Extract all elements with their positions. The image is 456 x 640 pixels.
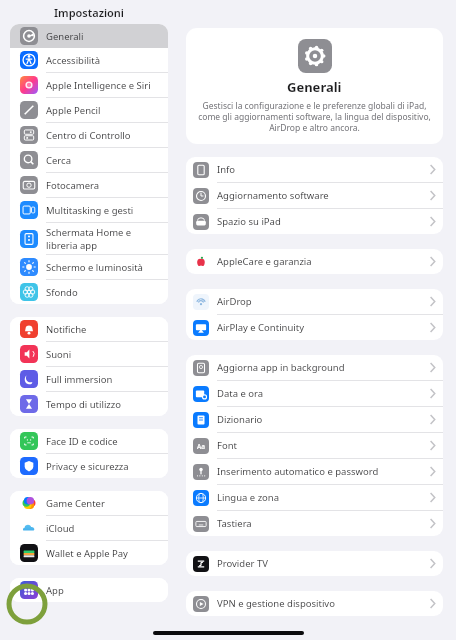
staticText: Tempo di utilizzo: [46, 398, 122, 411]
button[interactable]: Tempo di utilizzo: [10, 392, 168, 416]
button[interactable]: Schermata Home e: [10, 223, 168, 254]
staticText: Font: [217, 439, 237, 452]
staticText: Suoni: [46, 348, 72, 361]
button[interactable]: Accessibilità: [10, 48, 168, 72]
staticText: Data e ora: [217, 387, 264, 400]
staticText: Spazio su iPad: [217, 215, 281, 228]
button[interactable]: Game Center: [10, 491, 168, 515]
staticText: AppleCare e garanzia: [217, 255, 312, 268]
staticText: Dizionario: [217, 413, 263, 426]
staticText: Cerca: [46, 154, 71, 167]
staticText: AirPlay e Continuity: [217, 321, 305, 334]
button[interactable]: Dizionario: [186, 407, 443, 432]
staticText: Centro di Controllo: [46, 129, 131, 142]
staticText: iCloud: [46, 522, 75, 535]
staticText: Apple Pencil: [46, 104, 101, 117]
staticText: Privacy e sicurezza: [46, 460, 129, 473]
staticText: Schermo e luminosità: [46, 261, 143, 274]
staticText: libreria app: [46, 239, 98, 252]
button[interactable]: Full immersion: [10, 367, 168, 391]
staticText: Notifiche: [46, 323, 87, 336]
staticText: Lingua e zona: [217, 491, 280, 504]
button[interactable]: Notifiche: [10, 317, 168, 341]
button[interactable]: Provider TV: [186, 551, 443, 576]
button[interactable]: Inserimento automatico e password: [186, 459, 443, 484]
staticText: Sfondo: [46, 286, 78, 299]
staticText: Gestisci la configurazione e le preferen…: [198, 100, 431, 133]
staticText: VPN e gestione dispositivo: [217, 597, 335, 610]
staticText: Tastiera: [217, 517, 252, 530]
button[interactable]: Tastiera: [186, 511, 443, 536]
button[interactable]: Schermo e luminosità: [10, 255, 168, 279]
staticText: Schermata Home e: [46, 226, 132, 239]
button[interactable]: Lingua e zona: [186, 485, 443, 510]
staticText: Game Center: [46, 497, 105, 510]
button[interactable]: iCloud: [10, 516, 168, 540]
button[interactable]: AirDrop: [186, 289, 443, 314]
staticText: App: [46, 584, 64, 597]
staticText: Generali: [287, 78, 342, 96]
button[interactable]: Apple Intelligence e Siri: [10, 73, 168, 97]
button[interactable]: Aa: [186, 433, 443, 458]
button[interactable]: Privacy e sicurezza: [10, 454, 168, 478]
staticText: Aggiornamento software: [217, 189, 329, 202]
button[interactable]: Sfondo: [10, 280, 168, 304]
staticText: Apple Intelligence e Siri: [46, 79, 151, 92]
staticText: Accessibilità: [46, 54, 101, 67]
staticText: Impostazioni: [54, 5, 124, 20]
staticText: Full immersion: [46, 373, 113, 386]
button[interactable]: AppleCare e garanzia: [186, 249, 443, 274]
staticText: Aa: [197, 442, 205, 451]
staticText: Wallet e Apple Pay: [46, 547, 128, 560]
button[interactable]: Spazio su iPad: [186, 209, 443, 234]
button[interactable]: Generali: [10, 24, 168, 48]
button[interactable]: Apple Pencil: [10, 98, 168, 122]
staticText: Inserimento automatico e password: [217, 465, 379, 478]
button[interactable]: Data e ora: [186, 381, 443, 406]
button[interactable]: Suoni: [10, 342, 168, 366]
staticText: Face ID e codice: [46, 435, 118, 448]
staticText: Fotocamera: [46, 179, 100, 192]
button[interactable]: Multitasking e gesti: [10, 198, 168, 222]
button[interactable]: VPN e gestione dispositivo: [186, 591, 443, 616]
button[interactable]: App: [10, 578, 168, 602]
button[interactable]: Cerca: [10, 148, 168, 172]
staticText: Info: [217, 163, 236, 176]
staticText: Multitasking e gesti: [46, 204, 134, 217]
button[interactable]: Info: [186, 157, 443, 182]
button[interactable]: Face ID e codice: [10, 429, 168, 453]
button[interactable]: Aggiorna app in background: [186, 355, 443, 380]
button[interactable]: Fotocamera: [10, 173, 168, 197]
staticText: Generali: [46, 30, 84, 43]
button[interactable]: Wallet e Apple Pay: [10, 541, 168, 565]
button[interactable]: AirPlay e Continuity: [186, 315, 443, 340]
staticText: Provider TV: [217, 557, 268, 570]
staticText: Aggiorna app in background: [217, 361, 345, 374]
button[interactable]: Aggiornamento software: [186, 183, 443, 208]
button[interactable]: Centro di Controllo: [10, 123, 168, 147]
staticText: AirDrop: [217, 295, 252, 308]
